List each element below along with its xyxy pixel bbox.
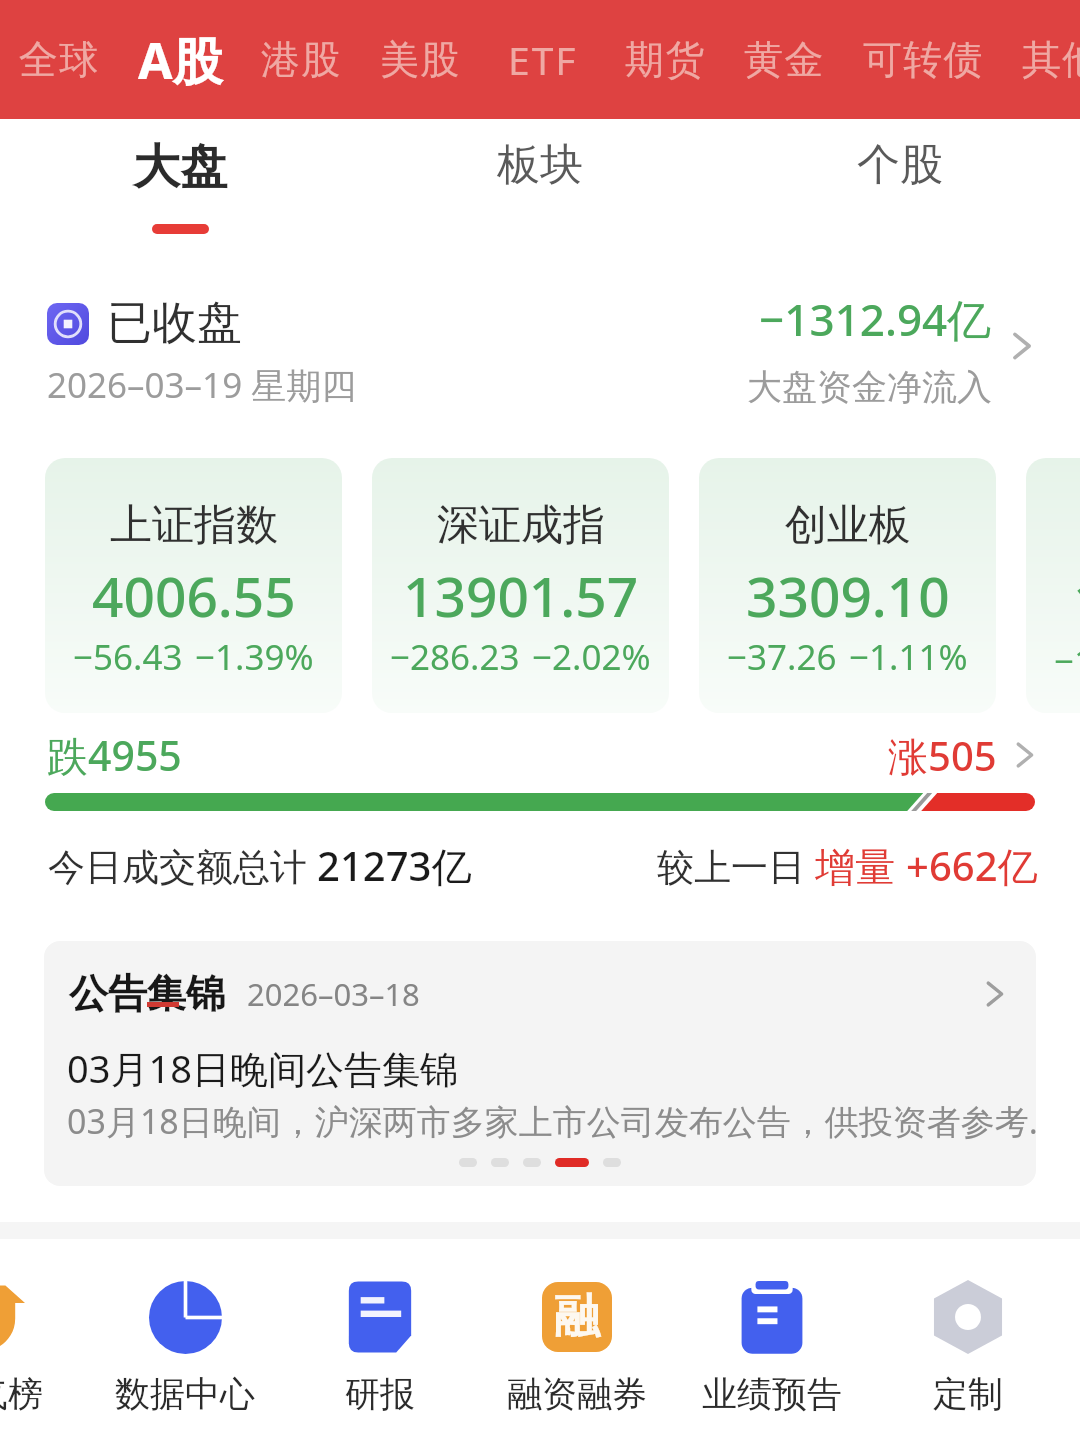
staticText: 个股 [857, 138, 943, 192]
staticText: 4006.55 [92, 558, 296, 633]
staticText: 03月18日晚间，沪深两市多家上市公司发布公告，供投资者参考... [67, 1098, 1036, 1144]
staticText: 定制 [933, 1372, 1003, 1416]
staticText: 较上一日 [657, 840, 815, 891]
button[interactable]: 业绩预告 [675, 1239, 869, 1439]
other: 热榜 [0, 1282, 25, 1352]
staticText: 人气榜 [0, 1372, 43, 1416]
staticText: 创业板 [785, 499, 911, 552]
other: 数据中心 [149, 1281, 222, 1354]
button[interactable]: 创业板 [699, 458, 996, 713]
button[interactable]: 研报 [283, 1239, 477, 1439]
button[interactable]: 全球 [0, 15, 119, 104]
button[interactable]: 美股 [361, 15, 480, 104]
button[interactable]: 公告集锦 [44, 941, 1036, 1186]
staticText: 全球 [19, 35, 100, 84]
staticText: 1180.22 [1073, 562, 1080, 637]
staticText: 期货 [625, 35, 706, 84]
button[interactable]: 深证成指 [372, 458, 669, 713]
staticText: 板块 [497, 138, 583, 192]
staticText: −1.39% [195, 633, 314, 681]
staticText: −12.30 [1054, 637, 1080, 685]
staticText: A股 [138, 26, 223, 94]
button[interactable]: 已收盘 [0, 283, 1080, 433]
button[interactable]: 数据中心 [88, 1239, 282, 1439]
button[interactable]: 融资融券 [480, 1239, 674, 1439]
staticText: 可转债 [863, 35, 984, 84]
staticText: 跌4955 [47, 727, 182, 783]
staticText: 已收盘 [107, 295, 242, 352]
other: 融资融券 [542, 1282, 612, 1352]
staticText: ETF [508, 33, 578, 86]
button[interactable]: 黄金 [725, 15, 844, 104]
staticText: −56.43 [73, 633, 183, 681]
staticText: 大盘资金净流入 [747, 365, 992, 409]
staticText: −1.11% [849, 633, 968, 681]
staticText: 港股 [261, 35, 342, 84]
staticText: 其他 [1022, 35, 1080, 84]
button[interactable]: 定制 [871, 1239, 1065, 1439]
staticText: 黄金 [744, 35, 825, 84]
staticText: +662亿 [906, 838, 1038, 893]
button[interactable]: 其他 [1003, 15, 1080, 104]
staticText: 研报 [345, 1372, 415, 1416]
staticText: 21273亿 [317, 838, 472, 893]
other: 研报 [342, 1280, 418, 1354]
button[interactable]: 个股 [720, 119, 1080, 249]
button[interactable]: A股 [119, 6, 242, 114]
button[interactable]: 港股 [242, 15, 361, 104]
staticText: 融 [554, 1288, 600, 1346]
button[interactable]: 热榜 [0, 1239, 87, 1439]
staticText: 涨505 [888, 728, 997, 783]
staticText: 03月18日晚间公告集锦 [67, 1042, 458, 1094]
button[interactable]: 大盘 [0, 119, 360, 249]
staticText: 业绩预告 [702, 1372, 842, 1416]
staticText: 深证成指 [437, 499, 605, 552]
other: 定制 [931, 1280, 1005, 1354]
staticText: 上证指数 [110, 499, 278, 552]
staticText: −1312.94亿 [759, 289, 992, 349]
staticText: 2026–03–18 [247, 973, 420, 1015]
button[interactable]: 可转债 [844, 15, 1003, 104]
staticText: −37.26 [727, 633, 837, 681]
staticText: 大盘 [133, 138, 227, 197]
staticText: −2.02% [532, 633, 651, 681]
staticText: 13901.57 [403, 558, 639, 633]
staticText: 融资融券 [507, 1372, 647, 1416]
staticText: −286.23 [390, 633, 520, 681]
staticText: 美股 [380, 35, 461, 84]
button[interactable]: 科创50 [1026, 458, 1080, 713]
button[interactable]: 板块 [360, 119, 720, 249]
staticText: 公告集锦 [69, 969, 225, 1018]
staticText: 3309.10 [746, 558, 950, 633]
staticText: 增量 [815, 838, 906, 893]
button[interactable]: ETF [480, 13, 606, 106]
staticText: 2026–03–19 星期四 [47, 361, 357, 409]
button[interactable]: 期货 [606, 15, 725, 104]
staticText: 今日成交额总计 [48, 840, 317, 891]
button[interactable]: 上证指数 [45, 458, 342, 713]
other: 业绩预告 [734, 1280, 810, 1354]
staticText: 数据中心 [115, 1372, 255, 1416]
